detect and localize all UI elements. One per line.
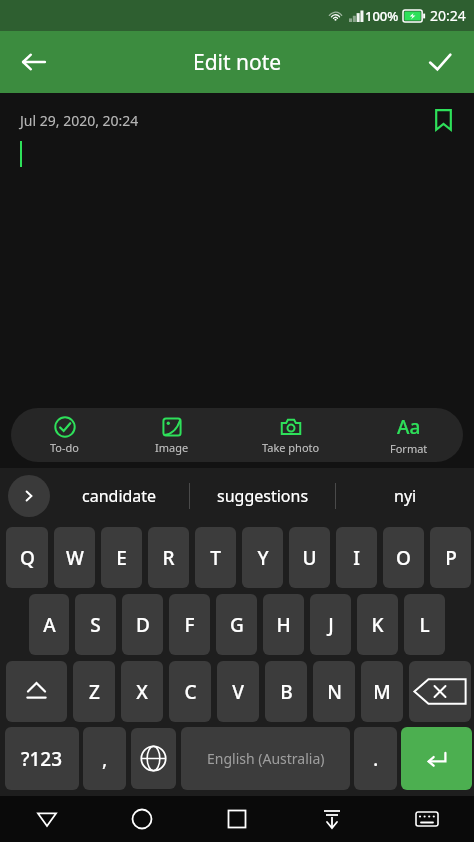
button[interactable]: J (310, 594, 351, 655)
button[interactable]: Switch keyboard (379, 796, 474, 842)
button[interactable]: N (313, 661, 355, 722)
staticText: G (230, 612, 244, 638)
button[interactable]: F (169, 594, 210, 655)
button[interactable]: A (29, 594, 69, 655)
button[interactable]: nyi (336, 468, 474, 524)
button[interactable]: E (101, 527, 142, 588)
button[interactable]: I (336, 527, 377, 588)
staticText: 100% (365, 7, 399, 25)
staticText: T (210, 545, 221, 571)
staticText: W (66, 545, 84, 571)
staticText: H (276, 612, 291, 638)
staticText: R (162, 545, 175, 571)
button[interactable]: Take photo (226, 408, 355, 462)
staticText: U (302, 545, 317, 571)
button[interactable]: H (263, 594, 304, 655)
button[interactable]: M (361, 661, 403, 722)
staticText: J (328, 612, 334, 638)
staticText: Edit note (193, 48, 282, 77)
staticText: suggestions (217, 485, 309, 507)
staticText: S (90, 612, 101, 638)
button[interactable]: Save note (416, 38, 464, 86)
button[interactable]: candidate (50, 468, 189, 524)
button[interactable]: Image (118, 408, 226, 462)
button[interactable]: Shift (6, 661, 67, 722)
staticText: P (445, 545, 457, 571)
button[interactable]: D (122, 594, 163, 655)
staticText: I (353, 545, 360, 571)
staticText: English (Australia) (207, 749, 325, 768)
button[interactable]: Enter (401, 727, 472, 790)
staticText: To-do (50, 440, 79, 455)
staticText: Aa (397, 414, 421, 440)
button[interactable]: English (Australia) (181, 727, 350, 790)
button[interactable]: V (217, 661, 259, 722)
staticText: K (371, 612, 384, 638)
button[interactable]: S (75, 594, 116, 655)
button[interactable]: Home (94, 796, 189, 842)
staticText: N (327, 679, 342, 705)
staticText: F (184, 612, 195, 638)
staticText: , (102, 745, 108, 772)
button[interactable]: B (265, 661, 307, 722)
button[interactable]: Q (6, 527, 48, 588)
button[interactable]: U (289, 527, 330, 588)
staticText: Take photo (262, 440, 320, 455)
button[interactable]: ?123 (5, 727, 79, 790)
button[interactable]: To-do (11, 408, 118, 462)
button[interactable]: Z (73, 661, 115, 722)
button[interactable]: L (404, 594, 445, 655)
button[interactable]: Y (242, 527, 283, 588)
button[interactable]: . (354, 727, 397, 790)
button[interactable]: Back (10, 38, 58, 86)
staticText: . (373, 745, 379, 772)
button[interactable]: W (54, 527, 95, 588)
staticText: O (396, 545, 411, 571)
staticText: nyi (394, 485, 417, 507)
staticText: C (184, 679, 197, 705)
button[interactable]: Back (0, 796, 94, 842)
button[interactable]: X (121, 661, 163, 722)
button[interactable]: G (216, 594, 257, 655)
staticText: A (43, 612, 56, 638)
staticText: candidate (82, 485, 157, 507)
staticText: X (136, 679, 148, 705)
staticText: B (280, 679, 293, 705)
staticText: D (136, 612, 150, 638)
staticText: E (116, 545, 127, 571)
staticText: Q (20, 545, 35, 571)
staticText: V (232, 679, 244, 705)
button[interactable]: suggestions (190, 468, 335, 524)
button[interactable]: C (169, 661, 211, 722)
staticText: Format (390, 441, 428, 456)
button[interactable]: Change language (131, 728, 176, 789)
button[interactable]: K (357, 594, 398, 655)
button[interactable]: Backspace (409, 661, 471, 722)
button[interactable]: More suggestions (8, 475, 50, 517)
staticText: Z (89, 679, 100, 705)
button[interactable]: Pin note (426, 103, 460, 137)
button[interactable]: , (83, 727, 126, 790)
staticText: M (373, 679, 391, 705)
staticText: Y (257, 545, 269, 571)
staticText: ?123 (21, 746, 63, 772)
button[interactable]: T (195, 527, 236, 588)
staticText: Jul 29, 2020, 20:24 (20, 111, 139, 130)
staticText: L (419, 612, 430, 638)
button[interactable]: O (383, 527, 424, 588)
staticText: Image (155, 440, 189, 455)
staticText: 20:24 (430, 6, 466, 25)
button[interactable]: R (148, 527, 189, 588)
button[interactable]: Recents (189, 796, 284, 842)
button[interactable]: P (430, 527, 471, 588)
button[interactable]: Aa (355, 408, 463, 462)
button[interactable]: Hide keyboard (284, 796, 379, 842)
